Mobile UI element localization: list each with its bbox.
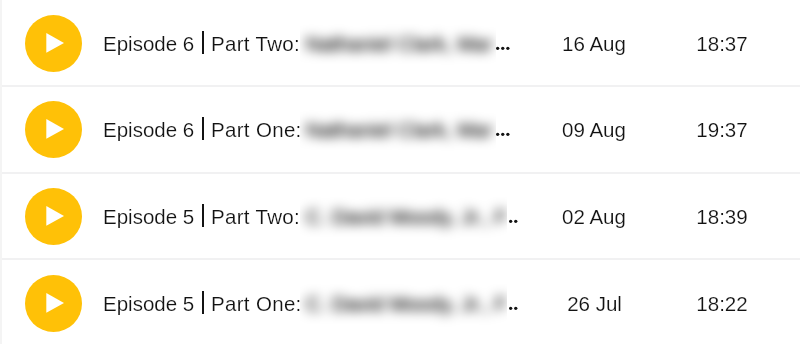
staticText: Part One:	[211, 292, 302, 315]
button[interactable]	[0, 0, 800, 85]
staticText: 09 Aug	[562, 118, 626, 141]
staticText: 16 Aug	[562, 32, 626, 55]
button[interactable]: Play episode	[25, 188, 82, 245]
staticText: 26 Jul	[567, 292, 622, 315]
staticText: Episode 5	[103, 205, 195, 228]
staticText: Nathaniel Clark, Mar	[300, 32, 493, 55]
button[interactable]	[0, 85, 800, 173]
staticText: C. David Moody, Jr., F	[300, 205, 507, 228]
button[interactable]	[0, 258, 800, 344]
staticText: Nathaniel Clark, Mar	[300, 32, 493, 55]
button[interactable]: Play episode	[25, 275, 82, 332]
staticText: Part Two:	[211, 32, 301, 55]
staticText: 18:22	[696, 292, 748, 315]
staticText: C. David Moody, Jr., F	[300, 205, 507, 228]
staticText: 02 Aug	[562, 205, 626, 228]
staticText: 19:37	[696, 118, 748, 141]
button[interactable]: Play episode	[25, 101, 82, 158]
staticText: C. David Moody, Jr., F	[300, 292, 507, 315]
staticText: Nathaniel Clark, Mar	[300, 118, 493, 141]
button[interactable]: Play episode	[25, 15, 82, 72]
staticText: 18:37	[696, 32, 748, 55]
staticText: C. David Moody, Jr., F	[300, 205, 507, 228]
staticText: Episode 6	[103, 118, 195, 141]
staticText: Nathaniel Clark, Mar	[300, 118, 493, 141]
staticText: C. David Moody, Jr., F	[300, 292, 507, 315]
staticText: C. David Moody, Jr., F	[300, 292, 507, 315]
staticText: Part One:	[211, 118, 302, 141]
staticText: Nathaniel Clark, Mar	[300, 32, 493, 55]
staticText: Episode 5	[103, 292, 195, 315]
button[interactable]	[0, 172, 800, 258]
staticText: Episode 6	[103, 32, 195, 55]
staticText: Part Two:	[211, 205, 301, 228]
staticText: 18:39	[696, 205, 748, 228]
staticText: Nathaniel Clark, Mar	[300, 118, 493, 141]
